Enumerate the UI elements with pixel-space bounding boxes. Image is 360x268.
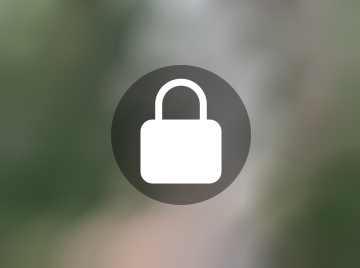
button[interactable]: Locked [111,65,251,205]
